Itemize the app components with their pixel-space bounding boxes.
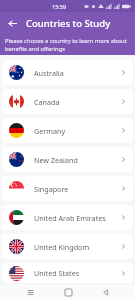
staticText: Canada <box>34 97 120 107</box>
button[interactable]: United States <box>2 263 133 283</box>
button[interactable]: Singapore <box>2 176 133 201</box>
button[interactable]: New Zealand <box>2 147 133 172</box>
staticText: United Arab Emirates <box>34 213 120 223</box>
staticText: Australia <box>34 68 120 78</box>
staticText: Countries to Study <box>26 17 111 30</box>
button[interactable]: Recent apps <box>22 285 38 300</box>
button[interactable]: Canada <box>2 89 133 114</box>
staticText: Please choose a country to learn more ab… <box>5 37 129 53</box>
button[interactable]: United Kingdom <box>2 234 133 259</box>
button[interactable]: Back <box>4 15 20 31</box>
staticText: New Zealand <box>34 155 120 165</box>
staticText: Germany <box>34 126 120 136</box>
button[interactable]: Home <box>60 285 76 300</box>
button[interactable]: Back <box>97 285 113 300</box>
staticText: Singapore <box>34 184 120 194</box>
button[interactable]: United Arab Emirates <box>2 205 133 230</box>
staticText: United Kingdom <box>34 242 120 252</box>
button[interactable]: Australia <box>2 60 133 85</box>
staticText: 15:59 <box>52 3 67 10</box>
button[interactable]: Germany <box>2 118 133 143</box>
staticText: United States <box>34 268 120 278</box>
